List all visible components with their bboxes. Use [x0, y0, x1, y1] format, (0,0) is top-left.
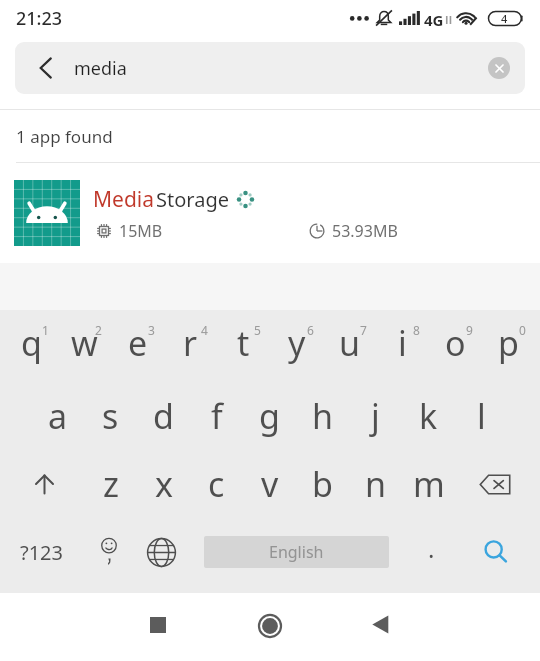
staticText: 21:23: [16, 6, 63, 31]
staticText: 2: [95, 322, 102, 338]
button[interactable]: r: [164, 313, 217, 382]
button[interactable]: n: [349, 450, 402, 518]
button[interactable]: .: [405, 518, 458, 586]
button[interactable]: p: [482, 313, 535, 382]
staticText: 4G: [424, 10, 444, 30]
staticText: 7: [360, 322, 367, 338]
staticText: media: [74, 56, 127, 81]
button[interactable]: m: [402, 450, 455, 518]
staticText: z: [103, 461, 119, 507]
button[interactable]: z: [84, 450, 137, 518]
button[interactable]: d: [137, 382, 190, 450]
staticText: 3: [148, 322, 155, 338]
staticText: d: [153, 393, 174, 439]
button[interactable]: x: [137, 450, 190, 518]
staticText: a: [48, 393, 68, 439]
staticText: 53.93MB: [332, 220, 398, 242]
staticText: 5: [254, 322, 261, 338]
button[interactable]: Shift: [5, 450, 84, 518]
staticText: t: [237, 320, 250, 366]
staticText: 0: [519, 322, 526, 338]
staticText: ?123: [20, 539, 63, 566]
button[interactable]: English: [204, 536, 389, 568]
staticText: 1 app found: [16, 125, 113, 148]
button[interactable]: Back: [15, 42, 525, 94]
staticText: 4: [501, 11, 508, 26]
staticText: n: [365, 461, 387, 507]
staticText: p: [498, 320, 519, 366]
staticText: r: [183, 320, 198, 366]
button[interactable]: h: [296, 382, 349, 450]
staticText: y: [288, 320, 306, 366]
staticText: m: [413, 461, 445, 507]
staticText: Media: [93, 185, 155, 214]
staticText: g: [259, 393, 280, 439]
staticText: j: [371, 393, 380, 439]
button[interactable]: f: [190, 382, 243, 450]
button[interactable]: Clear search: [473, 42, 525, 94]
button[interactable]: ?123: [0, 518, 82, 586]
button[interactable]: v: [243, 450, 296, 518]
staticText: u: [339, 320, 361, 366]
button[interactable]: w: [58, 313, 111, 382]
staticText: h: [312, 393, 334, 439]
button[interactable]: u: [323, 313, 376, 382]
staticText: l: [477, 393, 486, 439]
button[interactable]: Home: [242, 598, 298, 654]
staticText: s: [102, 393, 119, 439]
staticText: i: [398, 320, 407, 366]
staticText: 8: [413, 322, 420, 338]
button[interactable]: e: [111, 313, 164, 382]
button[interactable]: Back: [15, 42, 67, 94]
staticText: k: [419, 393, 438, 439]
staticText: 6: [307, 322, 314, 338]
button[interactable]: q: [5, 313, 58, 382]
button[interactable]: Change language: [135, 518, 188, 586]
button[interactable]: l: [455, 382, 508, 450]
staticText: 15MB: [119, 220, 163, 242]
button[interactable]: Backspace: [455, 450, 535, 518]
staticText: .: [428, 532, 435, 565]
button[interactable]: Recent apps: [130, 597, 186, 653]
button[interactable]: Search: [458, 518, 540, 586]
staticText: Storage: [156, 186, 229, 213]
button[interactable]: g: [243, 382, 296, 450]
button[interactable]: Back: [352, 596, 408, 652]
button[interactable]: y: [270, 313, 323, 382]
staticText: 4: [201, 322, 208, 338]
button[interactable]: c: [190, 450, 243, 518]
button[interactable]: s: [84, 382, 137, 450]
button[interactable]: a: [31, 382, 84, 450]
staticText: 9: [466, 322, 473, 338]
staticText: 1: [42, 322, 49, 338]
button[interactable]: o: [429, 313, 482, 382]
staticText: c: [208, 461, 225, 507]
staticText: English: [269, 541, 324, 563]
staticText: f: [211, 393, 223, 439]
staticText: w: [71, 320, 98, 366]
button[interactable]: j: [349, 382, 402, 450]
staticText: e: [128, 320, 148, 366]
staticText: b: [312, 461, 333, 507]
button[interactable]: k: [402, 382, 455, 450]
button[interactable]: Emoji and comma: [82, 518, 135, 586]
button[interactable]: b: [296, 450, 349, 518]
staticText: q: [21, 320, 42, 366]
staticText: x: [155, 461, 173, 507]
staticText: v: [261, 461, 279, 507]
button[interactable]: Media: [0, 163, 540, 263]
button[interactable]: i: [376, 313, 429, 382]
staticText: o: [445, 320, 466, 366]
button[interactable]: t: [217, 313, 270, 382]
